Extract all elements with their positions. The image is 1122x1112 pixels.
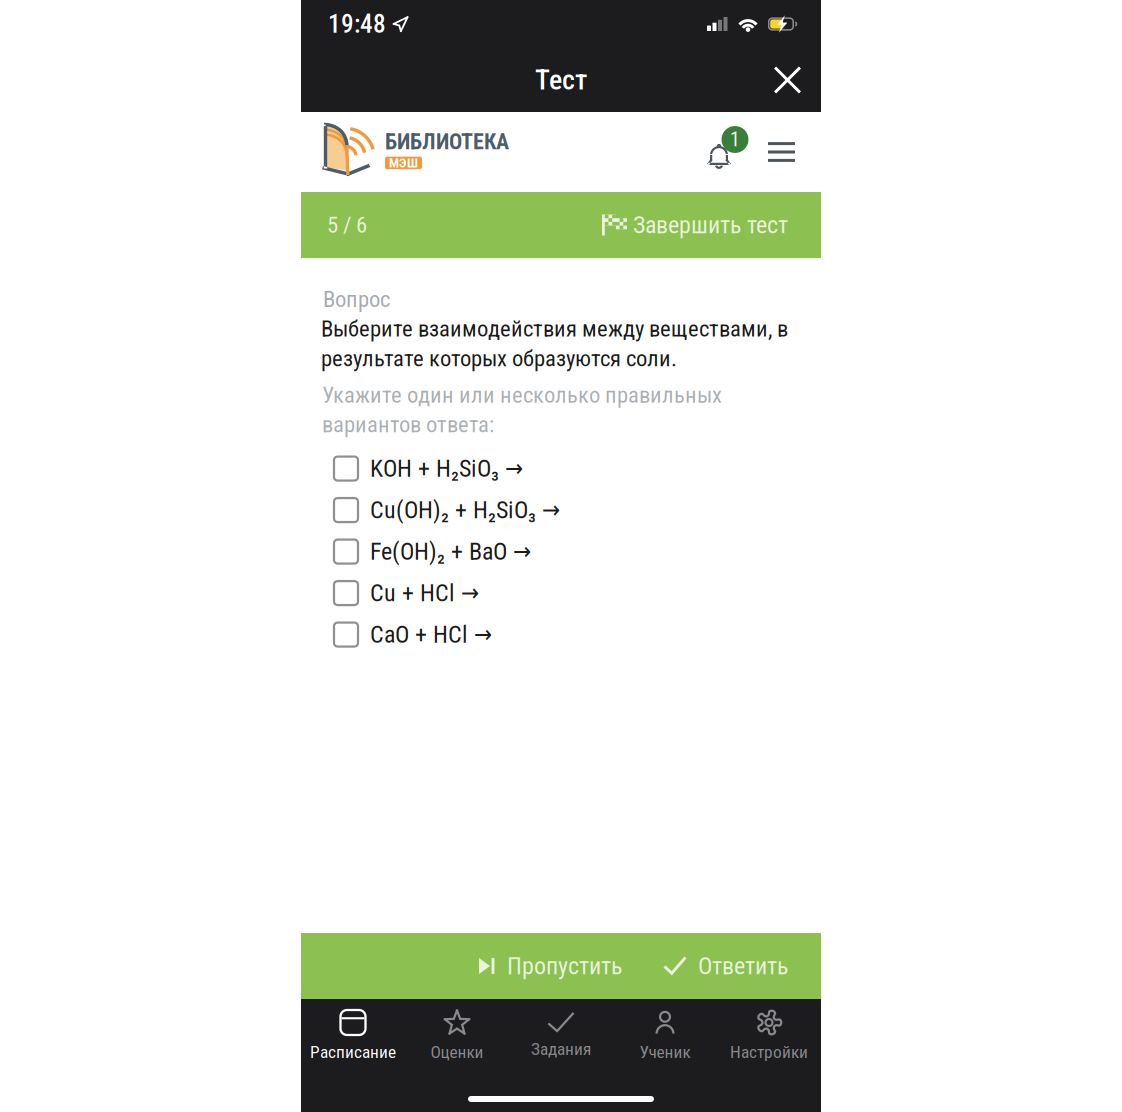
staticText: 5 / 6 xyxy=(327,212,367,238)
staticText: CaO + HCl → xyxy=(370,620,492,649)
staticText: Задания xyxy=(531,1039,591,1059)
button[interactable]: Cu + HCl → xyxy=(301,572,821,614)
button[interactable]: Завершить тест xyxy=(602,211,788,239)
staticText: 19:48 xyxy=(328,9,386,39)
staticText: Расписание xyxy=(310,1042,396,1062)
staticText: Настройки xyxy=(730,1042,808,1062)
staticText: Укажите один или несколько правильных xyxy=(322,382,722,408)
staticText: 1 xyxy=(730,128,740,151)
staticText: результате которых образуются соли. xyxy=(321,345,677,372)
button[interactable]: CaO + HCl → xyxy=(301,614,821,655)
staticText: Завершить тест xyxy=(633,211,788,239)
button[interactable]: Меню xyxy=(760,134,803,170)
staticText: БИБЛИОТЕКА xyxy=(385,129,509,155)
staticText: Ответить xyxy=(698,952,788,980)
button[interactable]: Задания xyxy=(509,1002,613,1069)
staticText: Cu(OH)₂ + H₂SiO₃ → xyxy=(370,496,560,524)
staticText: вариантов ответа: xyxy=(322,411,494,438)
button[interactable]: Расписание xyxy=(301,999,405,1072)
button[interactable]: Ученик xyxy=(613,999,717,1072)
staticText: Оценки xyxy=(430,1042,483,1062)
staticText: МЭШ xyxy=(389,155,418,171)
button[interactable]: Ответить xyxy=(664,952,788,980)
staticText: Cu + HCl → xyxy=(370,579,479,607)
staticText: Выберите взаимодействия между веществами… xyxy=(321,316,788,342)
staticText: KOH + H₂SiO₃ → xyxy=(370,454,523,483)
button[interactable]: Оценки xyxy=(405,999,509,1072)
button[interactable]: Уведомления xyxy=(703,126,755,178)
staticText: Пропустить xyxy=(507,952,622,980)
staticText: Fe(OH)₂ + BaO → xyxy=(370,537,531,566)
button[interactable]: Fe(OH)₂ + BaO → xyxy=(301,531,821,572)
button[interactable]: Закрыть xyxy=(764,58,811,101)
staticText: Вопрос xyxy=(323,286,390,313)
button[interactable]: Cu(OH)₂ + H₂SiO₃ → xyxy=(301,489,821,531)
staticText: Тест xyxy=(535,64,587,96)
button[interactable]: Пропустить xyxy=(479,952,622,980)
button[interactable]: KOH + H₂SiO₃ → xyxy=(301,448,821,489)
staticText: Ученик xyxy=(639,1042,690,1062)
button[interactable]: Настройки xyxy=(717,999,821,1072)
